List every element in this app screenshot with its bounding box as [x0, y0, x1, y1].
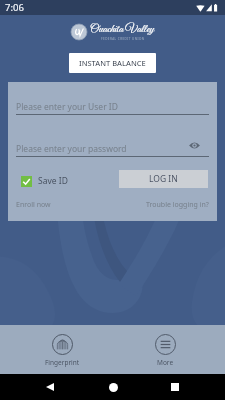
staticText: 7:06: [5, 1, 24, 14]
button[interactable]: Recent apps: [163, 375, 187, 399]
button[interactable]: Save ID: [16, 175, 68, 187]
staticText: Ouachita Valley: [90, 22, 155, 37]
button[interactable]: Fingerprint login: [41, 325, 84, 371]
button[interactable]: Back: [38, 375, 62, 399]
staticText: Save ID: [38, 175, 68, 187]
other: Show password: [188, 139, 201, 152]
other: Fingerprint login: [52, 334, 73, 355]
staticText: LOG IN: [149, 173, 178, 185]
staticText: Enroll now: [16, 200, 51, 210]
staticText: INSTANT BALANCE: [79, 58, 146, 68]
staticText: Please enter your password: [16, 143, 127, 155]
staticText: More: [157, 358, 174, 367]
button[interactable]: Trouble logging in?: [146, 200, 209, 210]
button[interactable]: INSTANT BALANCE: [69, 53, 156, 73]
staticText: Fingerprint: [45, 358, 80, 367]
staticText: Please enter your User ID: [16, 101, 118, 113]
button[interactable]: Enroll now: [16, 200, 51, 210]
button[interactable]: Home: [101, 375, 125, 399]
button[interactable]: LOG IN: [119, 170, 208, 188]
button[interactable]: More: [151, 325, 180, 371]
staticText: FEDERAL CREDIT UNION: [101, 37, 145, 41]
staticText: Trouble logging in?: [146, 200, 209, 210]
